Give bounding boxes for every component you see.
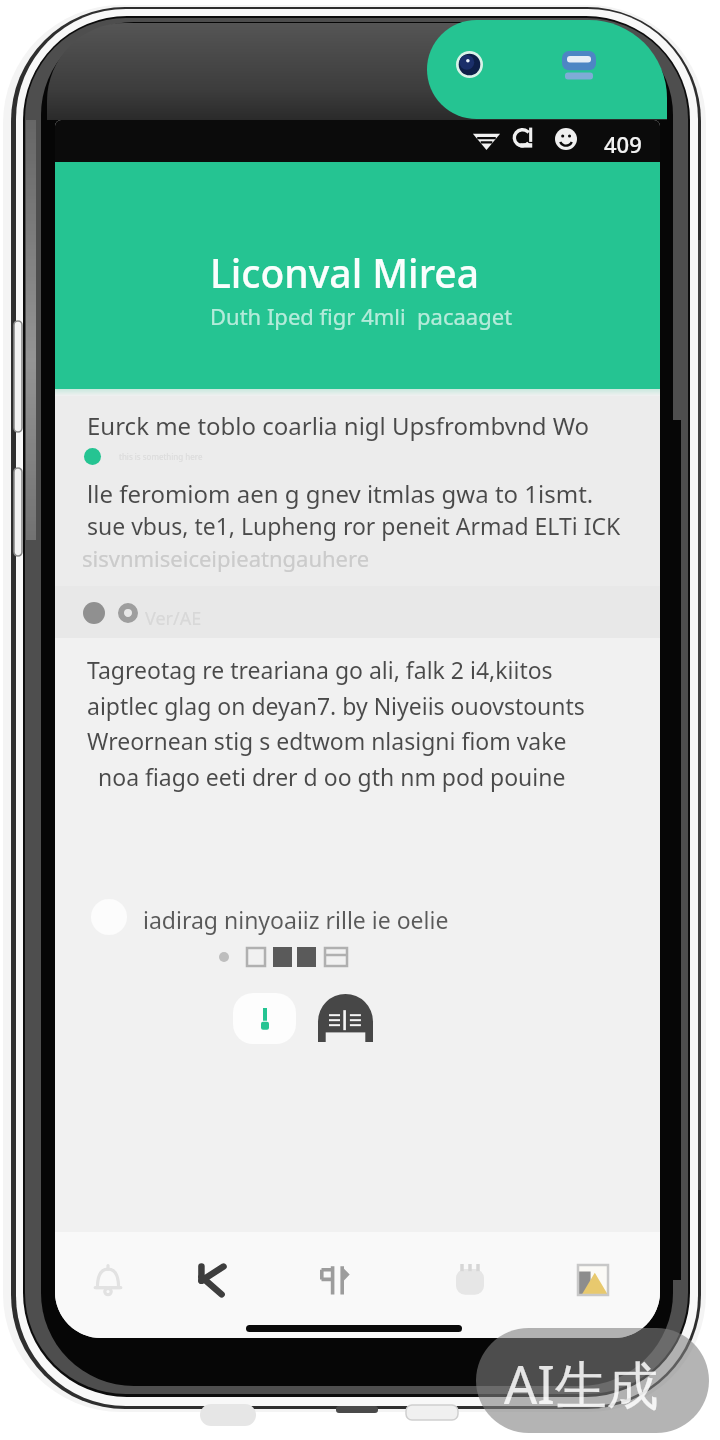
button[interactable]: Menu xyxy=(318,994,373,1042)
button[interactable]: Back xyxy=(176,1248,248,1312)
staticText: Wreornean stig s edtwom nlasigni fiom va… xyxy=(87,725,567,756)
button[interactable]: Notifications xyxy=(72,1248,144,1312)
staticText: Eurck me toblo coarlia nigl Upsfrombvnd … xyxy=(87,409,590,442)
staticText: Liconval Mirea xyxy=(210,246,480,299)
button[interactable]: Photos xyxy=(557,1248,629,1312)
staticText: AI生成 xyxy=(504,1348,659,1419)
button[interactable]: Dining xyxy=(299,1248,371,1312)
button[interactable]: Calendar xyxy=(434,1248,506,1312)
button[interactable]: Info xyxy=(233,993,296,1044)
staticText: aiptlec glag on deyan7. by Niyeiis ouovs… xyxy=(87,690,585,721)
staticText: this is something here xyxy=(119,451,203,462)
staticText: noa fiago eeti drer d oo gth nm pod poui… xyxy=(98,761,566,792)
staticText: Tagreotag re treariana go ali, falk 2 i4… xyxy=(87,654,553,685)
staticText: sue vbus, te1, Lupheng ror peneit Armad … xyxy=(87,510,621,541)
staticText: Duth Iped figr 4mli pacaaget xyxy=(210,301,513,331)
staticText: sisvnmiseiceipieatngauhere xyxy=(82,543,370,573)
staticText: 409 xyxy=(604,129,642,159)
staticText: iadirag ninyoaiiz rille ie oelie xyxy=(143,904,449,935)
staticText: Ver/AE xyxy=(145,606,202,631)
staticText: lle feromiom aen g gnev itmlas gwa to 1i… xyxy=(87,477,594,510)
